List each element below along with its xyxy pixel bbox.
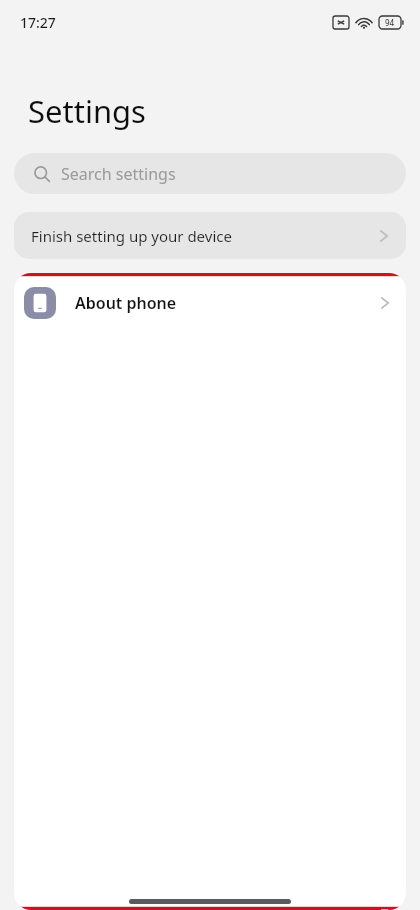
button[interactable]: Finish setting up your device <box>14 212 406 259</box>
staticText: Finish setting up your device <box>31 226 379 246</box>
staticText: Search settings <box>61 163 176 185</box>
button[interactable]: About phone <box>14 273 406 332</box>
staticText: 94 <box>385 17 395 28</box>
button[interactable]: Search settings <box>14 153 406 194</box>
other: About phone <box>24 287 56 319</box>
staticText: Settings <box>28 90 146 132</box>
staticText: About phone <box>75 292 380 314</box>
staticText: 17:27 <box>20 13 56 32</box>
